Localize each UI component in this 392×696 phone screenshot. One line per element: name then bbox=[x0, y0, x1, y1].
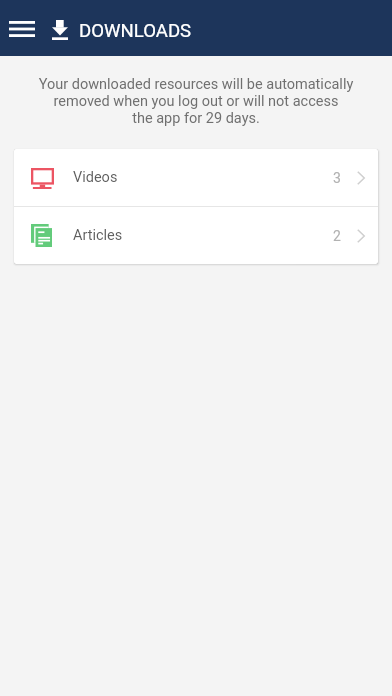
staticText: 3 bbox=[333, 170, 341, 186]
staticText: Videos bbox=[73, 169, 118, 186]
button[interactable]: Open navigation menu bbox=[4, 14, 40, 44]
staticText: 2 bbox=[333, 228, 341, 244]
staticText: DOWNLOADS bbox=[79, 20, 192, 42]
button[interactable]: Videos bbox=[14, 149, 378, 206]
button[interactable]: Articles bbox=[14, 207, 378, 264]
staticText: Articles bbox=[73, 227, 123, 244]
button[interactable]: Downloads bbox=[43, 14, 76, 45]
staticText: Your downloaded resources will be automa… bbox=[12, 76, 380, 127]
